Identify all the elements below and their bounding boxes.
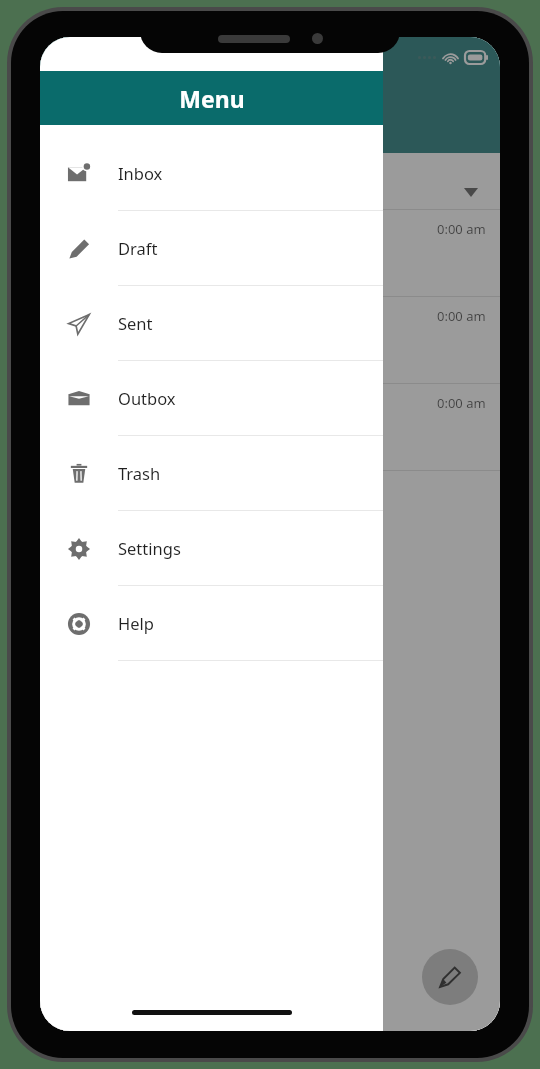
staticText: Help (118, 612, 154, 634)
button[interactable]: Settings (40, 511, 383, 586)
staticText: Menu (179, 83, 245, 114)
staticText: Hello there (54, 241, 127, 260)
button[interactable]: Trash (40, 436, 383, 511)
button[interactable]: Menu (40, 71, 383, 125)
staticText: Sent (118, 312, 153, 334)
staticText: Draft (118, 237, 158, 259)
button[interactable]: Inbox (40, 136, 383, 211)
staticText: 0:00 am (437, 220, 486, 238)
staticText: 0:00 am (437, 394, 486, 412)
button[interactable]: Outbox (40, 361, 383, 436)
button[interactable]: Help (40, 586, 383, 661)
staticText: Your trip (54, 328, 111, 347)
staticText: 0:00 am (437, 307, 486, 325)
button[interactable]: Sent (40, 286, 383, 361)
staticText: Settings (118, 537, 181, 559)
staticText: Outbox (118, 387, 176, 409)
button[interactable]: Draft (40, 211, 383, 286)
staticText: Trash (118, 462, 161, 484)
button[interactable]: Compose (422, 949, 478, 1005)
staticText: Inbox (118, 162, 163, 184)
